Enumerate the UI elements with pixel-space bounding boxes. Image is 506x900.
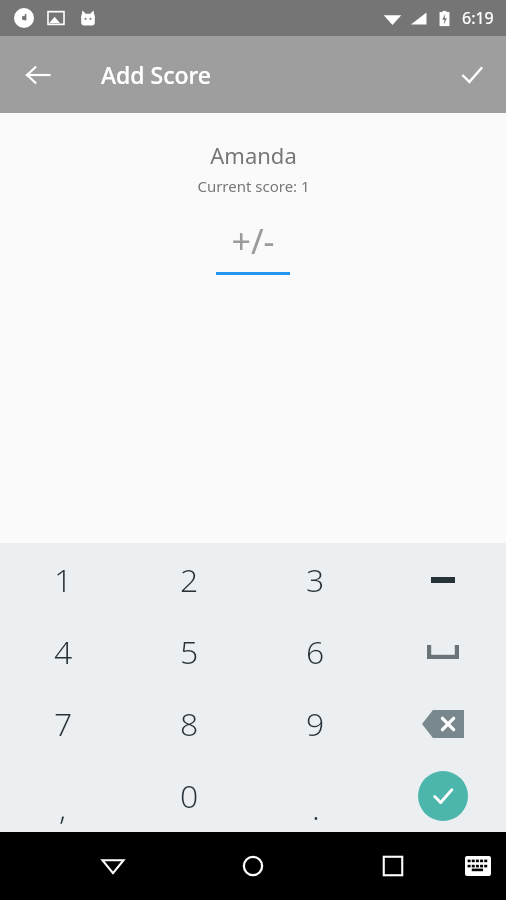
button[interactable]: Hide keyboard bbox=[85, 838, 141, 894]
button[interactable]: Space bbox=[379, 616, 506, 688]
button[interactable]: 7 bbox=[0, 688, 126, 760]
staticText: 9 bbox=[306, 702, 325, 746]
button[interactable]: Minus bbox=[379, 543, 506, 616]
staticText: , bbox=[59, 786, 67, 830]
staticText: Current score: 1 bbox=[197, 176, 310, 196]
button[interactable]: Home bbox=[225, 838, 281, 894]
staticText: Amanda bbox=[210, 140, 297, 170]
staticText: 0 bbox=[180, 774, 199, 818]
button[interactable]: Backspace bbox=[379, 688, 506, 760]
button[interactable]: 1 bbox=[0, 543, 126, 616]
staticText: 2 bbox=[180, 558, 199, 602]
staticText: 6:19 bbox=[462, 7, 494, 29]
button[interactable]: , bbox=[0, 760, 126, 832]
button[interactable]: Enter bbox=[379, 760, 506, 832]
button[interactable]: 2 bbox=[126, 543, 252, 616]
staticText: 1 bbox=[54, 558, 73, 602]
staticText: +/- bbox=[231, 218, 275, 264]
staticText: 4 bbox=[54, 630, 73, 674]
button[interactable]: 0 bbox=[126, 760, 252, 832]
button[interactable]: 4 bbox=[0, 616, 126, 688]
button[interactable]: 9 bbox=[252, 688, 379, 760]
staticText: 6 bbox=[306, 630, 325, 674]
button[interactable]: Save bbox=[444, 47, 500, 103]
staticText: . bbox=[312, 786, 320, 830]
staticText: 7 bbox=[54, 702, 73, 746]
button[interactable]: . bbox=[252, 760, 379, 832]
button[interactable]: Back bbox=[10, 47, 66, 103]
button[interactable]: 6 bbox=[252, 616, 379, 688]
button[interactable]: Recents bbox=[365, 838, 421, 894]
staticText: 8 bbox=[180, 702, 199, 746]
staticText: 3 bbox=[306, 558, 325, 602]
staticText: 5 bbox=[180, 630, 199, 674]
button[interactable]: 8 bbox=[126, 688, 252, 760]
button[interactable]: 5 bbox=[126, 616, 252, 688]
button[interactable]: 3 bbox=[252, 543, 379, 616]
button[interactable]: +/- bbox=[216, 218, 290, 275]
staticText: Add Score bbox=[101, 59, 212, 90]
button[interactable]: Switch keyboard bbox=[454, 842, 502, 890]
